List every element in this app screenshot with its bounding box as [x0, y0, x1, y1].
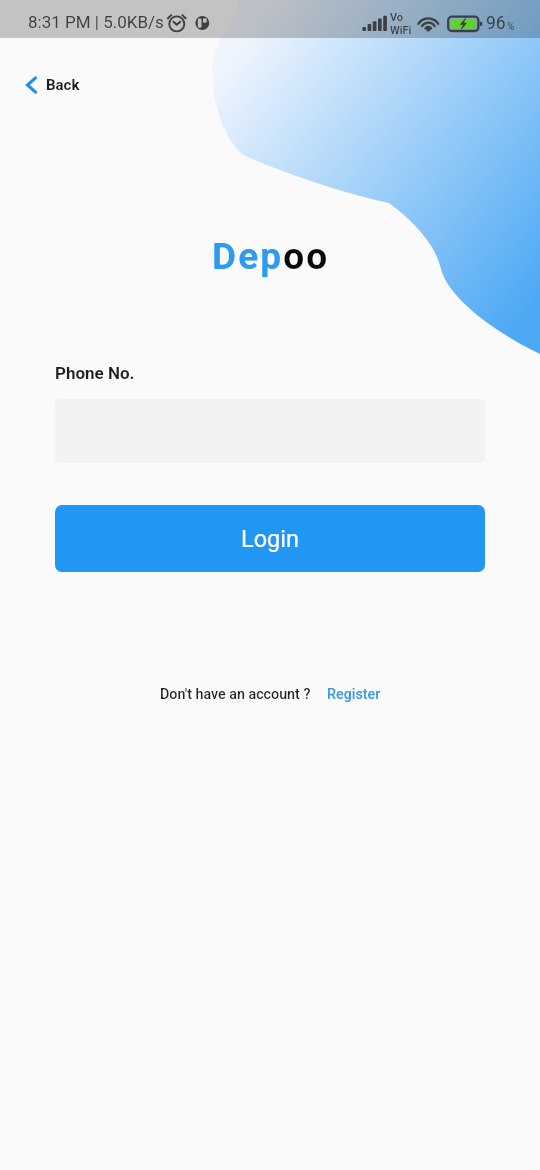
- staticText: Phone No.: [55, 363, 135, 383]
- staticText: 8:31 PM | 5.0KB/s: [28, 12, 164, 32]
- staticText: Don't have an account ?: [160, 686, 311, 703]
- button[interactable]: Back: [16, 67, 90, 103]
- button[interactable]: Register: [321, 680, 387, 709]
- staticText: Login: [241, 525, 299, 553]
- staticText: Register: [327, 686, 381, 703]
- staticText: Depoo: [212, 235, 330, 278]
- staticText: WiFi: [390, 24, 412, 37]
- staticText: Back: [46, 76, 80, 94]
- button[interactable]: Login: [55, 505, 485, 572]
- staticText: Vo: [390, 11, 404, 24]
- staticText: 96: [486, 13, 506, 34]
- staticText: %: [507, 21, 515, 33]
- other: Back: [26, 76, 37, 94]
